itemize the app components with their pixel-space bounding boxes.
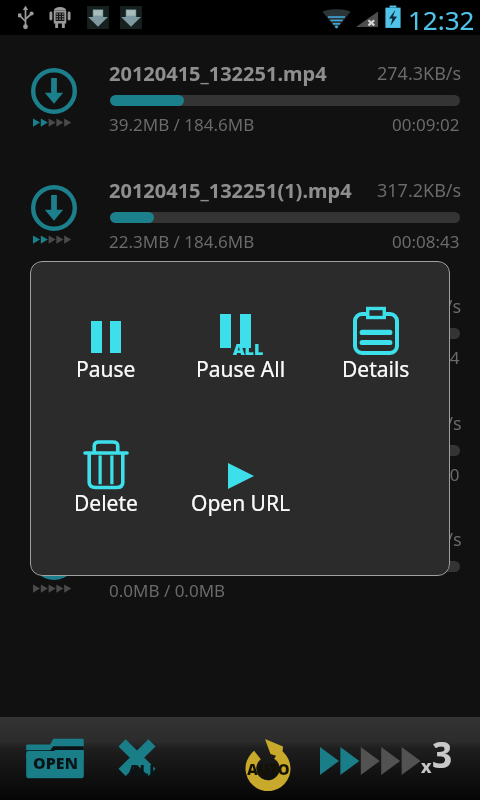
button[interactable]: 20120415_132251(1).mp4: [0, 153, 480, 271]
staticText: Pause: [76, 355, 136, 384]
staticText: 12.4MB / 184.6MB: [109, 346, 255, 369]
button[interactable]: Auto: [220, 717, 330, 800]
staticText: 12:32: [408, 2, 475, 37]
button[interactable]: Speed multiplier: [315, 717, 480, 800]
staticText: 22.3MB / 184.6MB: [109, 230, 255, 253]
staticText: 20120415_132251(1).mp4: [109, 177, 352, 204]
staticText: 317.2KB/s: [377, 178, 462, 203]
button[interactable]: Open folder: [0, 717, 110, 800]
staticText: 00:00:00: [392, 463, 460, 486]
staticText: Open URL: [191, 489, 291, 518]
staticText: 0.0MB / 0.0MB: [109, 579, 226, 602]
button[interactable]: Delete: [38, 433, 173, 529]
button[interactable]: Details: [308, 299, 443, 395]
button[interactable]: 20120415_132251.mp4: [0, 36, 480, 154]
button[interactable]: 20120415_132251(2).mp4: [0, 269, 480, 387]
staticText: Delete: [74, 489, 138, 518]
staticText: 00:00:44: [392, 346, 460, 369]
staticText: Details: [342, 355, 410, 384]
staticText: 0.0KB/s: [398, 411, 462, 436]
staticText: AUTO: [247, 759, 290, 779]
staticText: x: [421, 754, 432, 779]
staticText: ALL: [128, 759, 159, 781]
staticText: 20120415_132251(2).mp4: [109, 293, 352, 320]
staticText: 00:08:43: [392, 230, 460, 253]
staticText: 274.3KB/s: [377, 61, 462, 86]
button[interactable]: Cancel all: [110, 717, 220, 800]
staticText: Pause All: [196, 355, 286, 384]
staticText: 20120415_132251.mp4: [109, 60, 327, 87]
staticText: 00:09:02: [392, 113, 460, 136]
staticText: ALL: [233, 338, 264, 360]
button[interactable]: Pause: [38, 299, 173, 395]
button[interactable]: 20120415_132251(4).mp4: [0, 502, 480, 620]
button[interactable]: 20120415_132251(3).mp4: [0, 386, 480, 504]
button[interactable]: Open URL: [173, 433, 308, 529]
staticText: 3: [432, 731, 453, 779]
staticText: 0.0MB / 0.0MB: [109, 463, 226, 486]
staticText: 0.0KB/s: [398, 527, 462, 552]
staticText: 242.9KB/s: [377, 294, 462, 319]
staticText: 39.2MB / 184.6MB: [109, 113, 255, 136]
staticText: OPEN: [33, 752, 78, 774]
button[interactable]: ALL: [173, 299, 308, 395]
